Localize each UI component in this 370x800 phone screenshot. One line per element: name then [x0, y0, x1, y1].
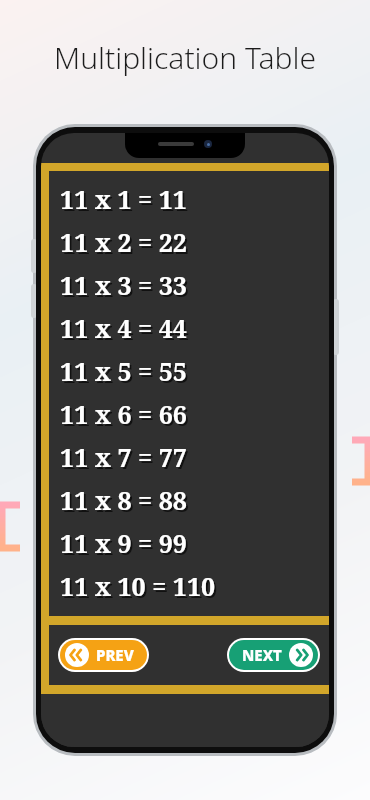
staticText: 11 x 7 = 77	[62, 442, 189, 476]
button[interactable]: 11 x 8 = 88	[60, 478, 329, 521]
button[interactable]: 11 x 5 = 55	[60, 349, 329, 392]
button[interactable]: NEXT	[234, 640, 313, 670]
staticText: 11 x 7 = 77	[60, 440, 187, 474]
staticText: 11 x 4 = 44	[60, 311, 187, 345]
button[interactable]: 11 x 7 = 77	[60, 435, 329, 478]
staticText: 11 x 5 = 55	[60, 354, 187, 388]
staticText: 11 x 10 = 110	[60, 569, 216, 603]
button[interactable]: PREV	[65, 640, 142, 670]
staticText: Multiplication Table	[0, 37, 370, 78]
staticText: 11 x 3 = 33	[60, 268, 187, 302]
button[interactable]: 11 x 10 = 110	[60, 564, 329, 607]
staticText: 11 x 2 = 22	[60, 225, 187, 259]
staticText: NEXT	[242, 645, 282, 665]
staticText: 11 x 10 = 110	[62, 571, 218, 605]
staticText: 11 x 6 = 66	[60, 397, 187, 431]
staticText: 11 x 6 = 66	[62, 399, 189, 433]
staticText: 11 x 8 = 88	[60, 483, 187, 517]
button[interactable]: 11 x 6 = 66	[60, 392, 329, 435]
staticText: PREV	[96, 645, 134, 665]
button[interactable]: 11 x 9 = 99	[60, 521, 329, 564]
button[interactable]: 11 x 3 = 33	[60, 263, 329, 306]
button[interactable]: 11 x 1 = 11	[60, 177, 329, 220]
staticText: 11 x 1 = 11	[62, 184, 189, 218]
button[interactable]: 11 x 4 = 44	[60, 306, 329, 349]
staticText: 11 x 2 = 22	[62, 227, 189, 261]
staticText: 11 x 4 = 44	[62, 313, 189, 347]
staticText: 11 x 1 = 11	[60, 182, 187, 216]
staticText: 11 x 8 = 88	[62, 485, 189, 519]
staticText: 11 x 9 = 99	[60, 526, 187, 560]
button[interactable]: 11 x 2 = 22	[60, 220, 329, 263]
staticText: 11 x 5 = 55	[62, 356, 189, 390]
staticText: 11 x 3 = 33	[62, 270, 189, 304]
staticText: 11 x 9 = 99	[62, 528, 189, 562]
